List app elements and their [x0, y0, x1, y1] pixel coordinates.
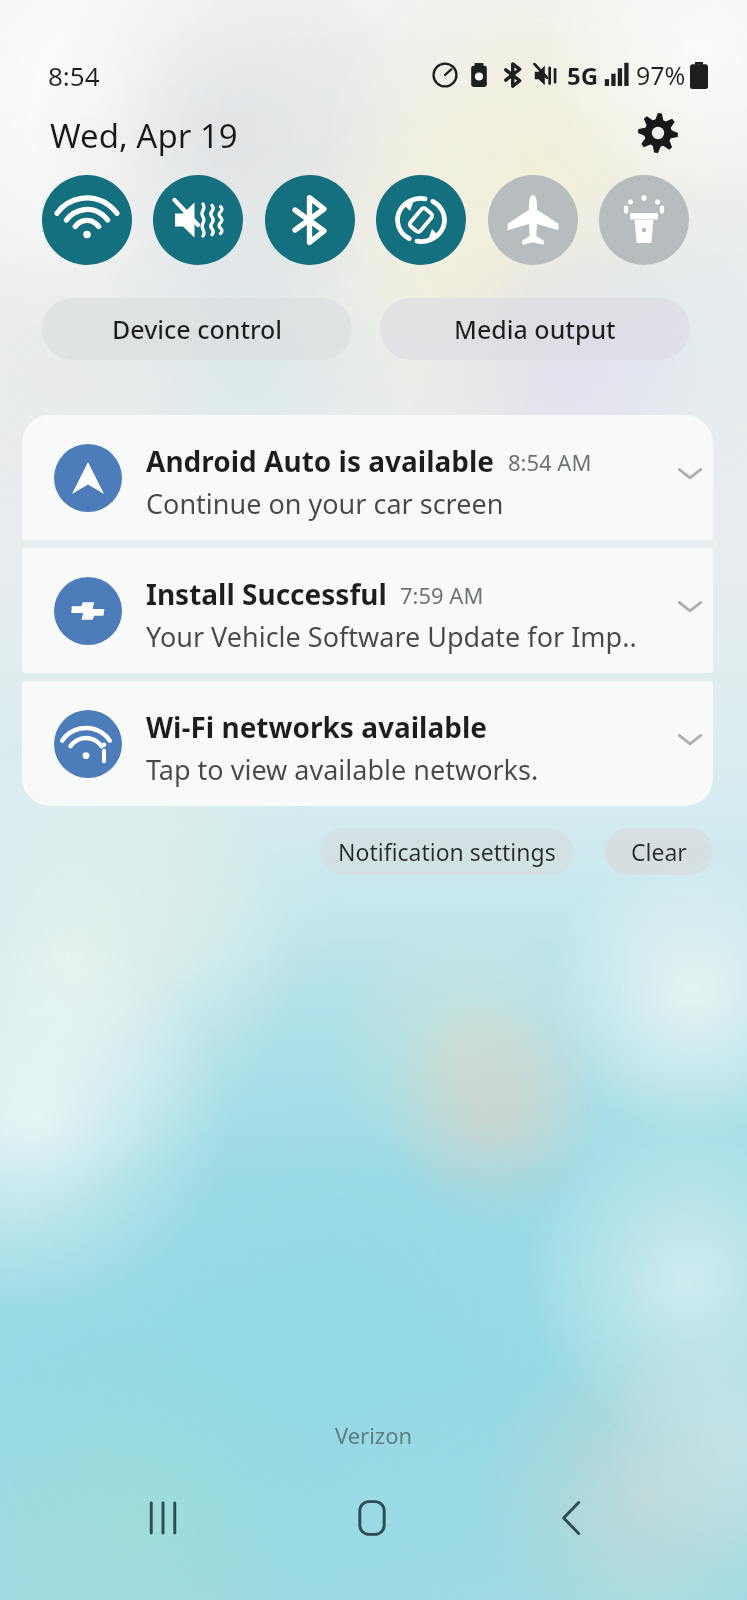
button[interactable]: Expand notification [658, 707, 713, 771]
staticText: Wi-Fi networks available [146, 708, 487, 746]
staticText: Device control [112, 312, 283, 346]
staticText: Continue on your car screen [146, 485, 504, 522]
button[interactable]: Home [307, 1470, 437, 1566]
button[interactable]: Notification settings [320, 828, 573, 875]
button[interactable]: Media output [380, 298, 690, 360]
staticText: 5G [567, 59, 599, 92]
button[interactable]: Recents [98, 1470, 228, 1566]
button[interactable]: Mute [153, 175, 243, 265]
button[interactable]: Flashlight [599, 175, 689, 265]
staticText: 97% [636, 58, 686, 92]
staticText: Android Auto is available [146, 442, 495, 480]
button[interactable]: Back [507, 1470, 637, 1566]
staticText: Install Successful [146, 575, 387, 613]
staticText: Clear [631, 836, 687, 867]
button[interactable]: Clear [605, 828, 713, 875]
button[interactable]: Bluetooth [265, 175, 355, 265]
button[interactable]: Wi-Fi networks available [22, 681, 713, 806]
button[interactable]: Device control [42, 298, 352, 360]
button[interactable]: Install Successful [22, 548, 713, 673]
button[interactable]: Android Auto is available [22, 415, 713, 540]
staticText: Notification settings [338, 836, 556, 867]
staticText: Wed, Apr 19 [50, 113, 238, 158]
staticText: Media output [454, 312, 616, 346]
button[interactable]: Airplane mode [488, 175, 578, 265]
button[interactable]: Expand notification [658, 441, 713, 505]
staticText: Tap to view available networks. [146, 751, 539, 788]
staticText: 8:54 AM [508, 447, 592, 477]
staticText: Your Vehicle Software Update for Imp.. [146, 618, 637, 655]
button[interactable]: Wi-Fi [42, 175, 132, 265]
button[interactable]: Auto rotate [376, 175, 466, 265]
button[interactable]: Settings [625, 100, 691, 166]
button[interactable]: Expand notification [658, 574, 713, 638]
staticText: Verizon [0, 1420, 747, 1450]
staticText: 8:54 [48, 58, 100, 93]
staticText: 7:59 AM [400, 580, 484, 610]
